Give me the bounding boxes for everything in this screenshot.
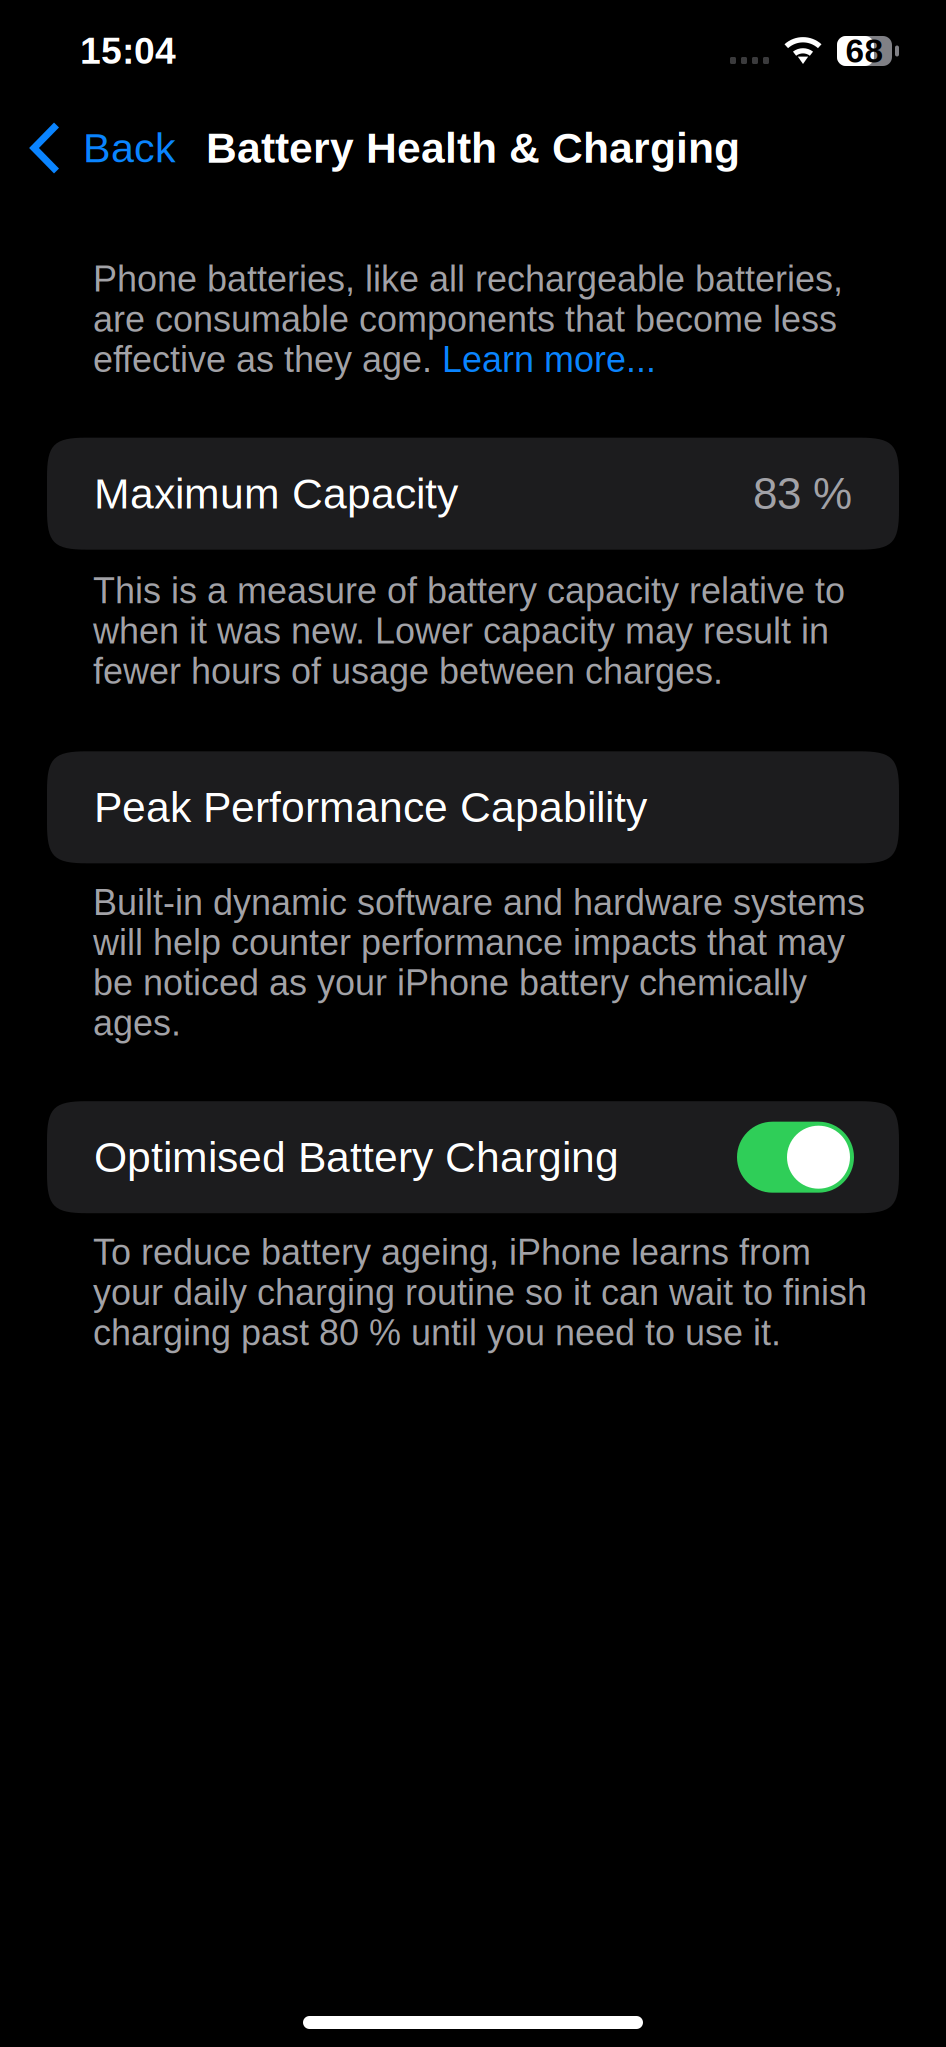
staticText: Optimised Battery Charging <box>94 1133 619 1181</box>
staticText: effective as they age. <box>93 339 442 380</box>
staticText: are consumable components that become le… <box>93 299 837 339</box>
button[interactable]: Learn more... <box>442 339 656 380</box>
button[interactable]: Maximum Capacity <box>47 438 899 550</box>
button[interactable]: Optimised Battery Charging, on <box>737 1122 854 1193</box>
staticText: Peak Performance Capability <box>94 783 647 831</box>
staticText: Built-in dynamic software and hardware s… <box>93 882 865 1043</box>
button[interactable]: Peak Performance Capability <box>47 751 899 863</box>
button[interactable]: Back <box>0 100 230 196</box>
staticText: Maximum Capacity <box>94 470 458 517</box>
staticText: Battery Health & Charging <box>206 124 740 172</box>
staticText: This is a measure of battery capacity re… <box>93 571 845 691</box>
staticText: 15:04 <box>80 30 176 72</box>
staticText: Phone batteries, like all rechargeable b… <box>93 259 843 299</box>
staticText: 68 <box>845 32 883 70</box>
staticText: To reduce battery ageing, iPhone learns … <box>93 1232 867 1353</box>
staticText: 83 % <box>753 469 852 518</box>
staticText: Back <box>83 125 176 171</box>
staticText: Learn more... <box>442 339 656 380</box>
